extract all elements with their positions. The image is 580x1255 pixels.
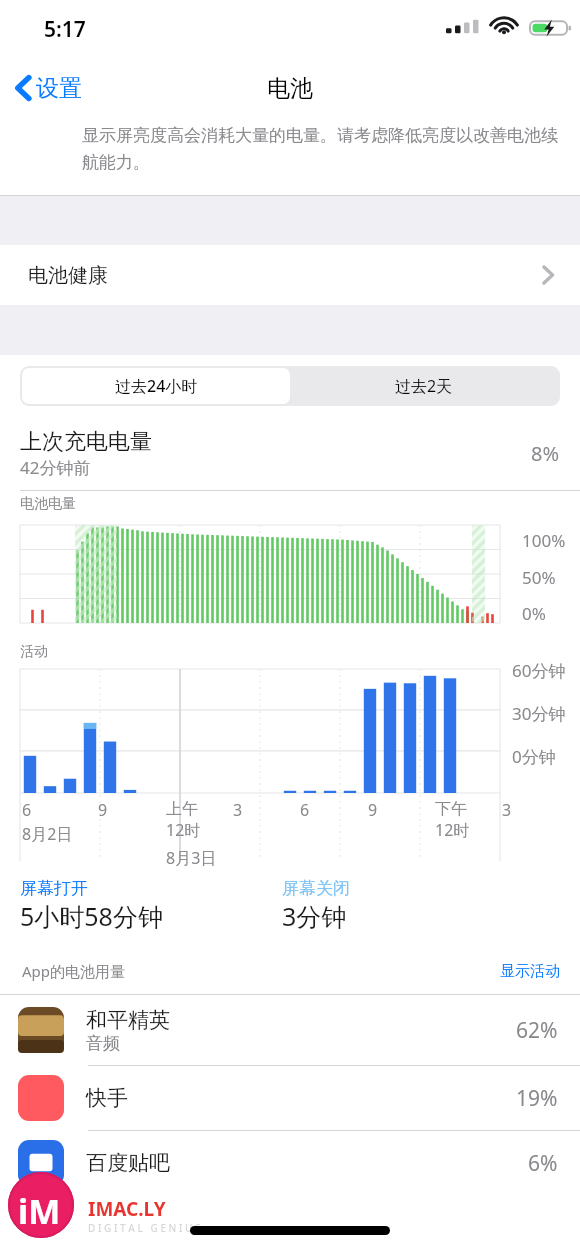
staticText: 3 [502,799,512,821]
staticText: 0% [522,602,546,625]
button[interactable]: 电池健康 [0,245,580,305]
staticText: 8月2日 [22,823,73,845]
staticText: 过去24小时 [115,375,198,397]
staticText: 6% [528,1149,558,1178]
button[interactable]: 过去2天 [290,368,558,404]
staticText: IMAC.LY [88,1196,166,1222]
staticText: 6 [22,799,32,821]
staticText: 9 [368,799,378,821]
staticText: 电池 [267,74,313,103]
staticText: 5:17 [44,15,86,44]
staticText: 100% [522,529,566,552]
staticText: D I G I T A L G E N I U S [88,1221,201,1235]
staticText: 8月3日 [166,847,217,869]
other: 打开电池健康 [542,265,554,285]
button[interactable]: 过去24小时 [22,368,290,404]
staticText: 60分钟 [512,659,566,682]
staticText: 活动 [20,643,48,661]
staticText: 30分钟 [512,702,566,725]
staticText: 快手 [86,1085,128,1111]
button[interactable]: 显示活动 [480,956,580,987]
staticText: 9 [98,799,108,821]
staticText: 6 [300,799,310,821]
staticText: 屏幕关闭 [282,878,350,899]
button[interactable]: 和平精英 [0,995,580,1065]
staticText: iM [18,1188,61,1234]
staticText: 过去2天 [395,375,453,397]
staticText: 上次充电电量 [20,428,152,456]
staticText: 上午 12时 [166,799,201,841]
staticText: 百度贴吧 [86,1150,170,1176]
staticText: 5小时58分钟 [20,899,163,933]
staticText: 50% [522,566,556,589]
staticText: 42分钟前 [20,456,91,479]
staticText: 下午 12时 [435,799,470,841]
staticText: App的电池用量 [22,961,126,981]
staticText: 3 [233,799,243,821]
button[interactable]: 快手 [0,1066,580,1130]
staticText: 显示活动 [500,962,560,981]
staticText: 62% [516,1016,558,1045]
staticText: 设置 [36,74,82,103]
staticText: 屏幕打开 [20,878,88,899]
staticText: 和平精英 [86,1007,170,1033]
staticText: 显示屏亮度高会消耗大量的电量。请考虑降低亮度以改善电池续航能力。 [82,125,558,173]
button[interactable]: 设置 [0,65,96,111]
staticText: 电池健康 [28,263,108,288]
button[interactable]: 百度贴吧 [0,1131,580,1195]
staticText: 19% [516,1084,558,1113]
staticText: 8% [531,440,560,467]
staticText: 音频 [86,1033,120,1054]
staticText: 3分钟 [282,899,347,933]
staticText: 0分钟 [512,745,556,768]
staticText: 电池电量 [20,495,76,513]
